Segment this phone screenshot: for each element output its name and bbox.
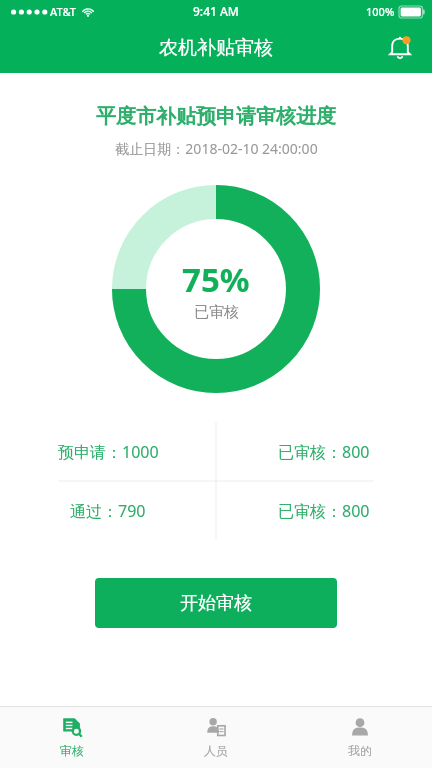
staticText: 农机补贴审核 bbox=[159, 36, 273, 60]
staticText: 我的 bbox=[348, 743, 372, 758]
button[interactable]: 已审核：800 bbox=[216, 481, 432, 540]
staticText: 人员 bbox=[204, 743, 228, 758]
staticText: 9:41 AM bbox=[193, 3, 239, 19]
button[interactable]: 通过：790 bbox=[0, 481, 216, 540]
staticText: 开始审核 bbox=[180, 592, 252, 615]
staticText: 已审核：800 bbox=[278, 500, 370, 522]
staticText: 75% bbox=[182, 257, 250, 302]
button[interactable]: 我的 bbox=[288, 707, 432, 768]
staticText: 通过：790 bbox=[70, 500, 146, 522]
button[interactable]: 审核 bbox=[0, 707, 144, 768]
staticText: 预申请：1000 bbox=[58, 441, 159, 463]
button[interactable]: Notifications bbox=[380, 28, 420, 68]
staticText: 已审核 bbox=[194, 303, 239, 322]
button[interactable]: 人员 bbox=[144, 707, 288, 768]
button[interactable]: 已审核：800 bbox=[216, 422, 432, 481]
staticText: 平度市补贴预申请审核进度 bbox=[96, 104, 336, 129]
staticText: 100% bbox=[366, 4, 395, 19]
staticText: 截止日期：2018-02-10 24:00:00 bbox=[115, 139, 318, 158]
staticText: 审核 bbox=[60, 743, 84, 758]
staticText: 已审核：800 bbox=[278, 441, 370, 463]
button[interactable]: 开始审核 bbox=[95, 578, 337, 628]
button[interactable]: 预申请：1000 bbox=[0, 422, 216, 481]
staticText: AT&T bbox=[50, 4, 77, 19]
